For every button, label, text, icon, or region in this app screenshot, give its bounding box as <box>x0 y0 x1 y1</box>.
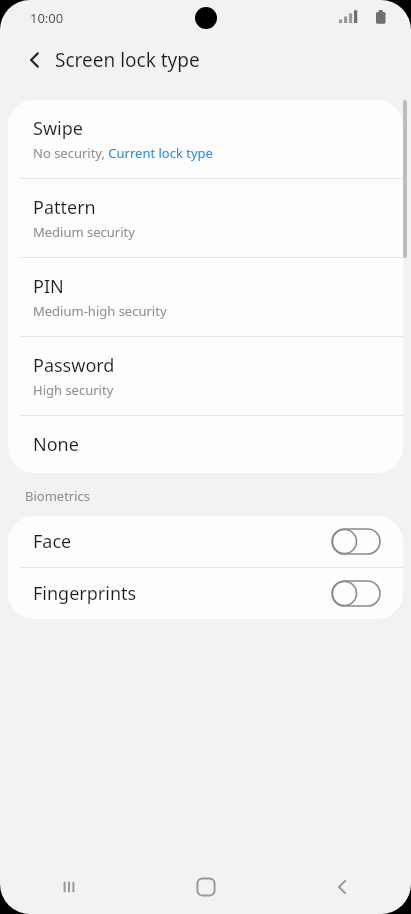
button[interactable]: Password <box>8 337 403 415</box>
staticText: No security, Current lock type <box>33 144 213 162</box>
button[interactable]: Face <box>8 516 403 567</box>
staticText: Fingerprints <box>33 581 331 606</box>
staticText: Face <box>33 529 331 554</box>
button[interactable]: Recents <box>0 860 137 914</box>
button[interactable]: Fingerprints <box>8 568 403 619</box>
staticText: None <box>33 432 79 457</box>
button[interactable]: Swipe <box>8 100 403 178</box>
button[interactable]: Back <box>12 36 60 84</box>
staticText: Pattern <box>33 195 96 220</box>
button[interactable]: PIN <box>8 258 403 336</box>
staticText: PIN <box>33 274 64 299</box>
staticText: Biometrics <box>25 487 91 505</box>
staticText: Password <box>33 353 115 378</box>
staticText: Medium security <box>33 223 135 241</box>
staticText: Screen lock type <box>55 47 200 73</box>
staticText: Swipe <box>33 116 83 141</box>
button[interactable]: None <box>8 416 403 473</box>
staticText: 10:00 <box>30 9 64 27</box>
button[interactable]: Pattern <box>8 179 403 257</box>
staticText: High security <box>33 381 114 399</box>
button[interactable]: Home <box>137 860 274 914</box>
button[interactable]: Back <box>274 860 411 914</box>
staticText: Medium-high security <box>33 302 167 320</box>
